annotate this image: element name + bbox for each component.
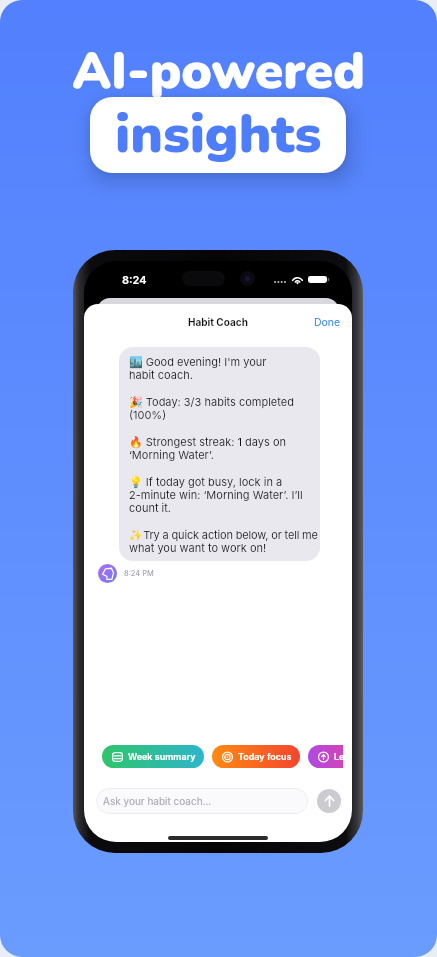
button[interactable]: Send message: [317, 789, 341, 813]
staticText: Level up: [334, 751, 343, 762]
staticText: 💡 If today got busy, lock in a: [129, 475, 283, 488]
staticText: 🏙️ Good evening! I'm your: [129, 355, 267, 368]
staticText: Done: [314, 316, 341, 329]
staticText: habit coach.: [129, 368, 193, 381]
staticText: Today focus: [238, 751, 292, 762]
staticText: Habit Coach: [188, 316, 248, 328]
staticText: count it.: [129, 501, 172, 514]
staticText: (100%): [129, 408, 167, 421]
staticText: ✨ Try a quick action below, or tell me: [129, 528, 318, 541]
staticText: 🔥 Strongest streak: 1 days on: [129, 435, 287, 448]
button[interactable]: Week summary: [102, 745, 204, 768]
staticText: ‘Morning Water’.: [129, 448, 214, 461]
staticText: what you want to work on!: [129, 541, 267, 554]
staticText: 2-minute win: ‘Morning Water’. I’ll: [129, 488, 303, 501]
button[interactable]: Today focus: [212, 745, 300, 768]
button[interactable]: Ask your habit coach...: [96, 788, 308, 814]
staticText: AI-powered: [72, 36, 365, 106]
button[interactable]: Done: [302, 310, 352, 337]
staticText: 8:24 PM: [124, 569, 154, 578]
staticText: 8:24: [122, 273, 147, 286]
button[interactable]: Level up: [308, 745, 343, 768]
staticText: 🎉 Today: 3/3 habits completed: [129, 395, 294, 408]
staticText: insights: [115, 97, 322, 171]
staticText: Ask your habit coach...: [103, 795, 212, 807]
staticText: Week summary: [128, 751, 196, 762]
